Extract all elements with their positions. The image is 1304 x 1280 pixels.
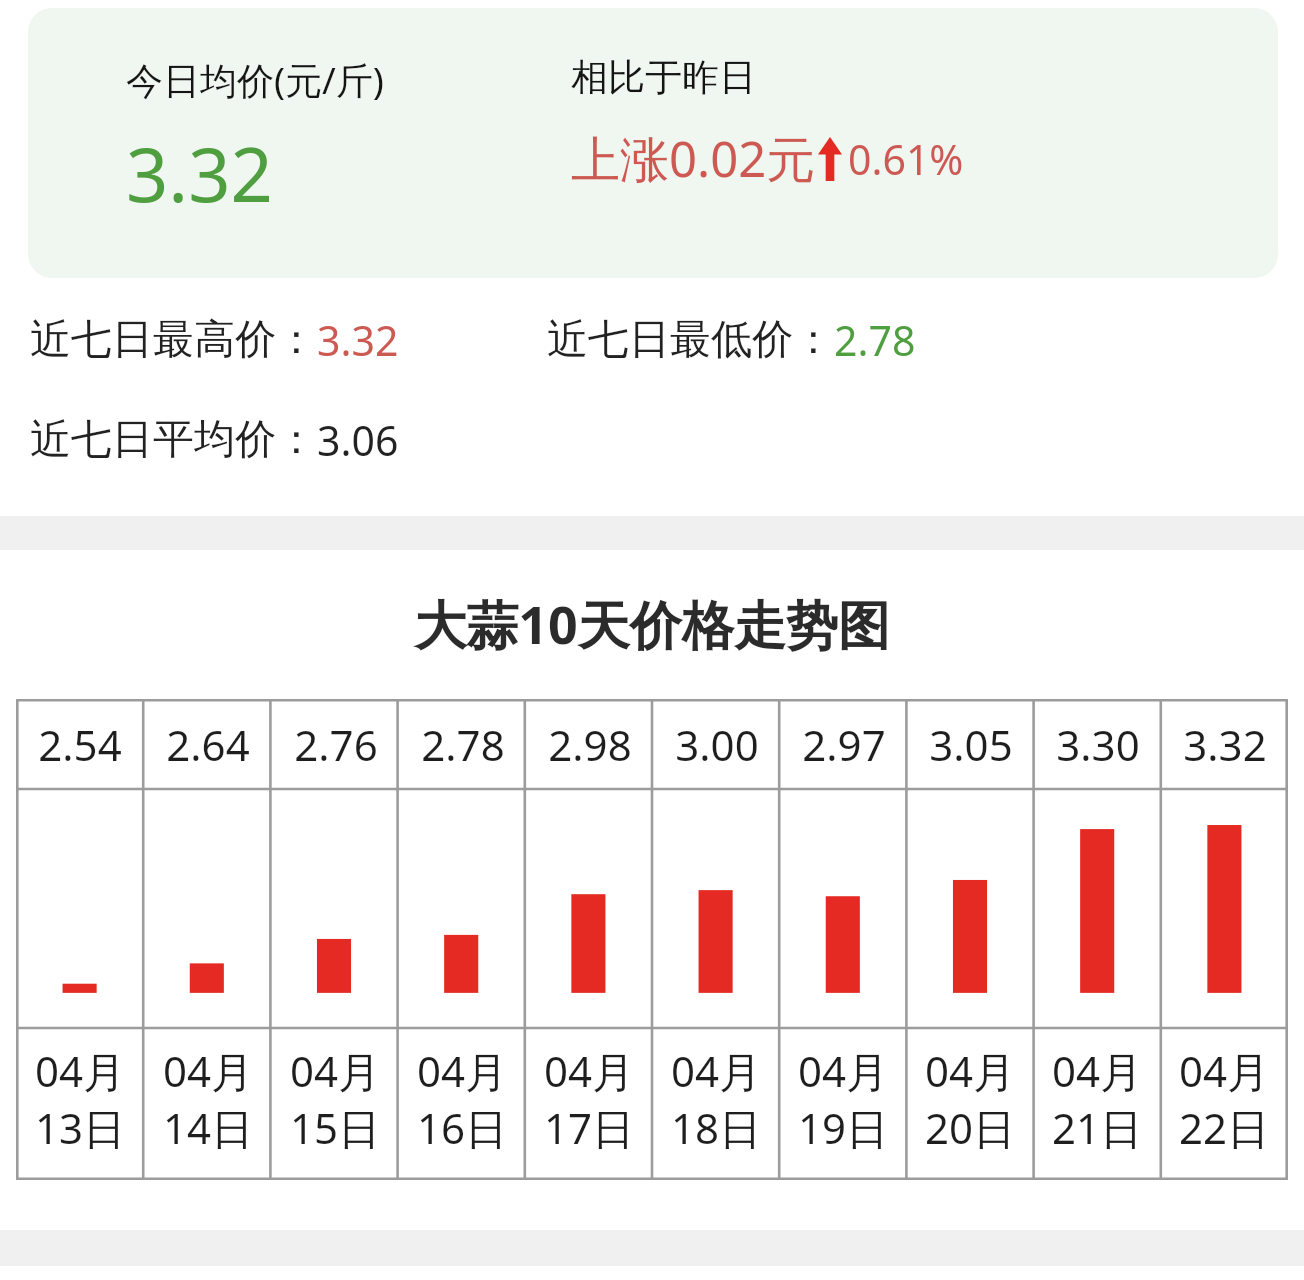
- staticText: 04月: [798, 1042, 889, 1099]
- staticText: 3.05: [929, 716, 1013, 773]
- staticText: 04月: [544, 1042, 635, 1099]
- staticText: 14日: [163, 1099, 254, 1156]
- staticText: 2.64: [166, 716, 250, 773]
- staticText: 04月: [925, 1042, 1016, 1099]
- staticText: 今日均价(元/斤): [126, 54, 384, 105]
- staticText: 04月: [1052, 1042, 1143, 1099]
- staticText: 近七日最低价：: [547, 314, 834, 366]
- staticText: 2.76: [294, 716, 378, 773]
- staticText: 2.98: [548, 716, 632, 773]
- staticText: 2.78: [834, 312, 916, 368]
- staticText: 04月: [163, 1042, 254, 1099]
- staticText: 16日: [417, 1099, 508, 1156]
- button[interactable]: 近七日最高价：: [30, 312, 399, 368]
- staticText: 19日: [798, 1099, 889, 1156]
- staticText: 上涨0.02元: [571, 125, 816, 192]
- button[interactable]: 近七日最低价：: [547, 312, 916, 368]
- staticText: 2.97: [802, 716, 886, 773]
- staticText: 04月: [290, 1042, 381, 1099]
- staticText: 15日: [290, 1099, 381, 1156]
- staticText: 22日: [1179, 1099, 1270, 1156]
- staticText: 04月: [671, 1042, 762, 1099]
- staticText: 2.78: [421, 716, 505, 773]
- staticText: 3.32: [317, 312, 399, 368]
- staticText: 近七日最高价：: [30, 314, 317, 366]
- staticText: 3.06: [317, 412, 399, 468]
- staticText: 大蒜10天价格走势图: [0, 588, 1304, 659]
- other: 上涨: [818, 137, 842, 181]
- staticText: 04月: [35, 1042, 126, 1099]
- staticText: 3.32: [126, 123, 273, 224]
- staticText: 17日: [544, 1099, 635, 1156]
- staticText: 18日: [671, 1099, 762, 1156]
- staticText: 21日: [1052, 1099, 1143, 1156]
- button[interactable]: 今日均价(元/斤): [28, 8, 1278, 278]
- staticText: 3.00: [675, 716, 759, 773]
- staticText: 04月: [417, 1042, 508, 1099]
- staticText: 相比于昨日: [571, 54, 756, 101]
- staticText: 20日: [925, 1099, 1016, 1156]
- staticText: 近七日平均价：: [30, 414, 317, 466]
- staticText: 3.32: [1183, 716, 1267, 773]
- staticText: 2.54: [38, 716, 122, 773]
- staticText: 13日: [35, 1099, 126, 1156]
- staticText: 04月: [1179, 1042, 1270, 1099]
- staticText: 3.30: [1056, 716, 1140, 773]
- button[interactable]: 近七日平均价：: [30, 412, 399, 468]
- staticText: 0.61%: [848, 131, 964, 187]
